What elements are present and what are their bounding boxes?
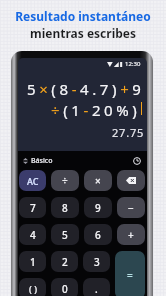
button[interactable]: 5 <box>51 224 79 245</box>
staticText: AC <box>27 175 39 187</box>
button[interactable]: 4 <box>19 224 46 245</box>
button[interactable]: ( ) <box>19 278 46 296</box>
staticText: 3 <box>94 255 100 269</box>
staticText: 6 <box>95 228 101 242</box>
staticText: 0 <box>62 282 68 296</box>
staticText: 5×(8-4.7)+9 <box>27 79 145 99</box>
button[interactable]: − <box>117 197 145 218</box>
button[interactable]: ÷ <box>51 170 79 191</box>
staticText: 27.75 <box>112 125 145 140</box>
button[interactable]: Básico <box>22 155 54 167</box>
staticText: ÷(1-20%) <box>51 100 141 120</box>
button[interactable]: Borrar <box>117 170 145 191</box>
button[interactable]: 1 <box>19 251 46 272</box>
button[interactable]: × <box>84 170 112 191</box>
staticText: 9 <box>95 201 101 215</box>
staticText: 8 <box>62 201 68 215</box>
staticText: + <box>128 228 134 242</box>
button[interactable]: 6 <box>84 224 112 245</box>
staticText: = <box>127 268 133 282</box>
button[interactable]: 3 <box>83 251 110 272</box>
staticText: 5 <box>62 228 68 242</box>
staticText: 1 <box>30 255 36 269</box>
staticText: Básico <box>31 156 53 166</box>
button[interactable]: 9 <box>84 197 112 218</box>
button[interactable]: 7 <box>19 197 46 218</box>
button[interactable]: 0 <box>51 278 78 296</box>
button[interactable]: Historial <box>131 155 143 167</box>
staticText: − <box>128 201 134 215</box>
staticText: 4 <box>30 228 36 242</box>
staticText: . <box>95 282 98 296</box>
button[interactable]: = <box>115 251 145 296</box>
staticText: ( ) <box>29 283 37 295</box>
staticText: mientras escribes <box>0 25 166 41</box>
staticText: × <box>95 174 101 188</box>
staticText: 7 <box>30 201 36 215</box>
staticText: ÷ <box>62 174 68 188</box>
staticText: Resultado instantáneo <box>0 8 166 24</box>
staticText: 2 <box>62 255 68 269</box>
button[interactable]: + <box>117 224 145 245</box>
staticText: 12:30 <box>125 60 141 68</box>
button[interactable]: 8 <box>51 197 79 218</box>
button[interactable]: . <box>83 278 110 296</box>
button[interactable]: AC <box>19 170 46 191</box>
button[interactable]: 2 <box>51 251 78 272</box>
